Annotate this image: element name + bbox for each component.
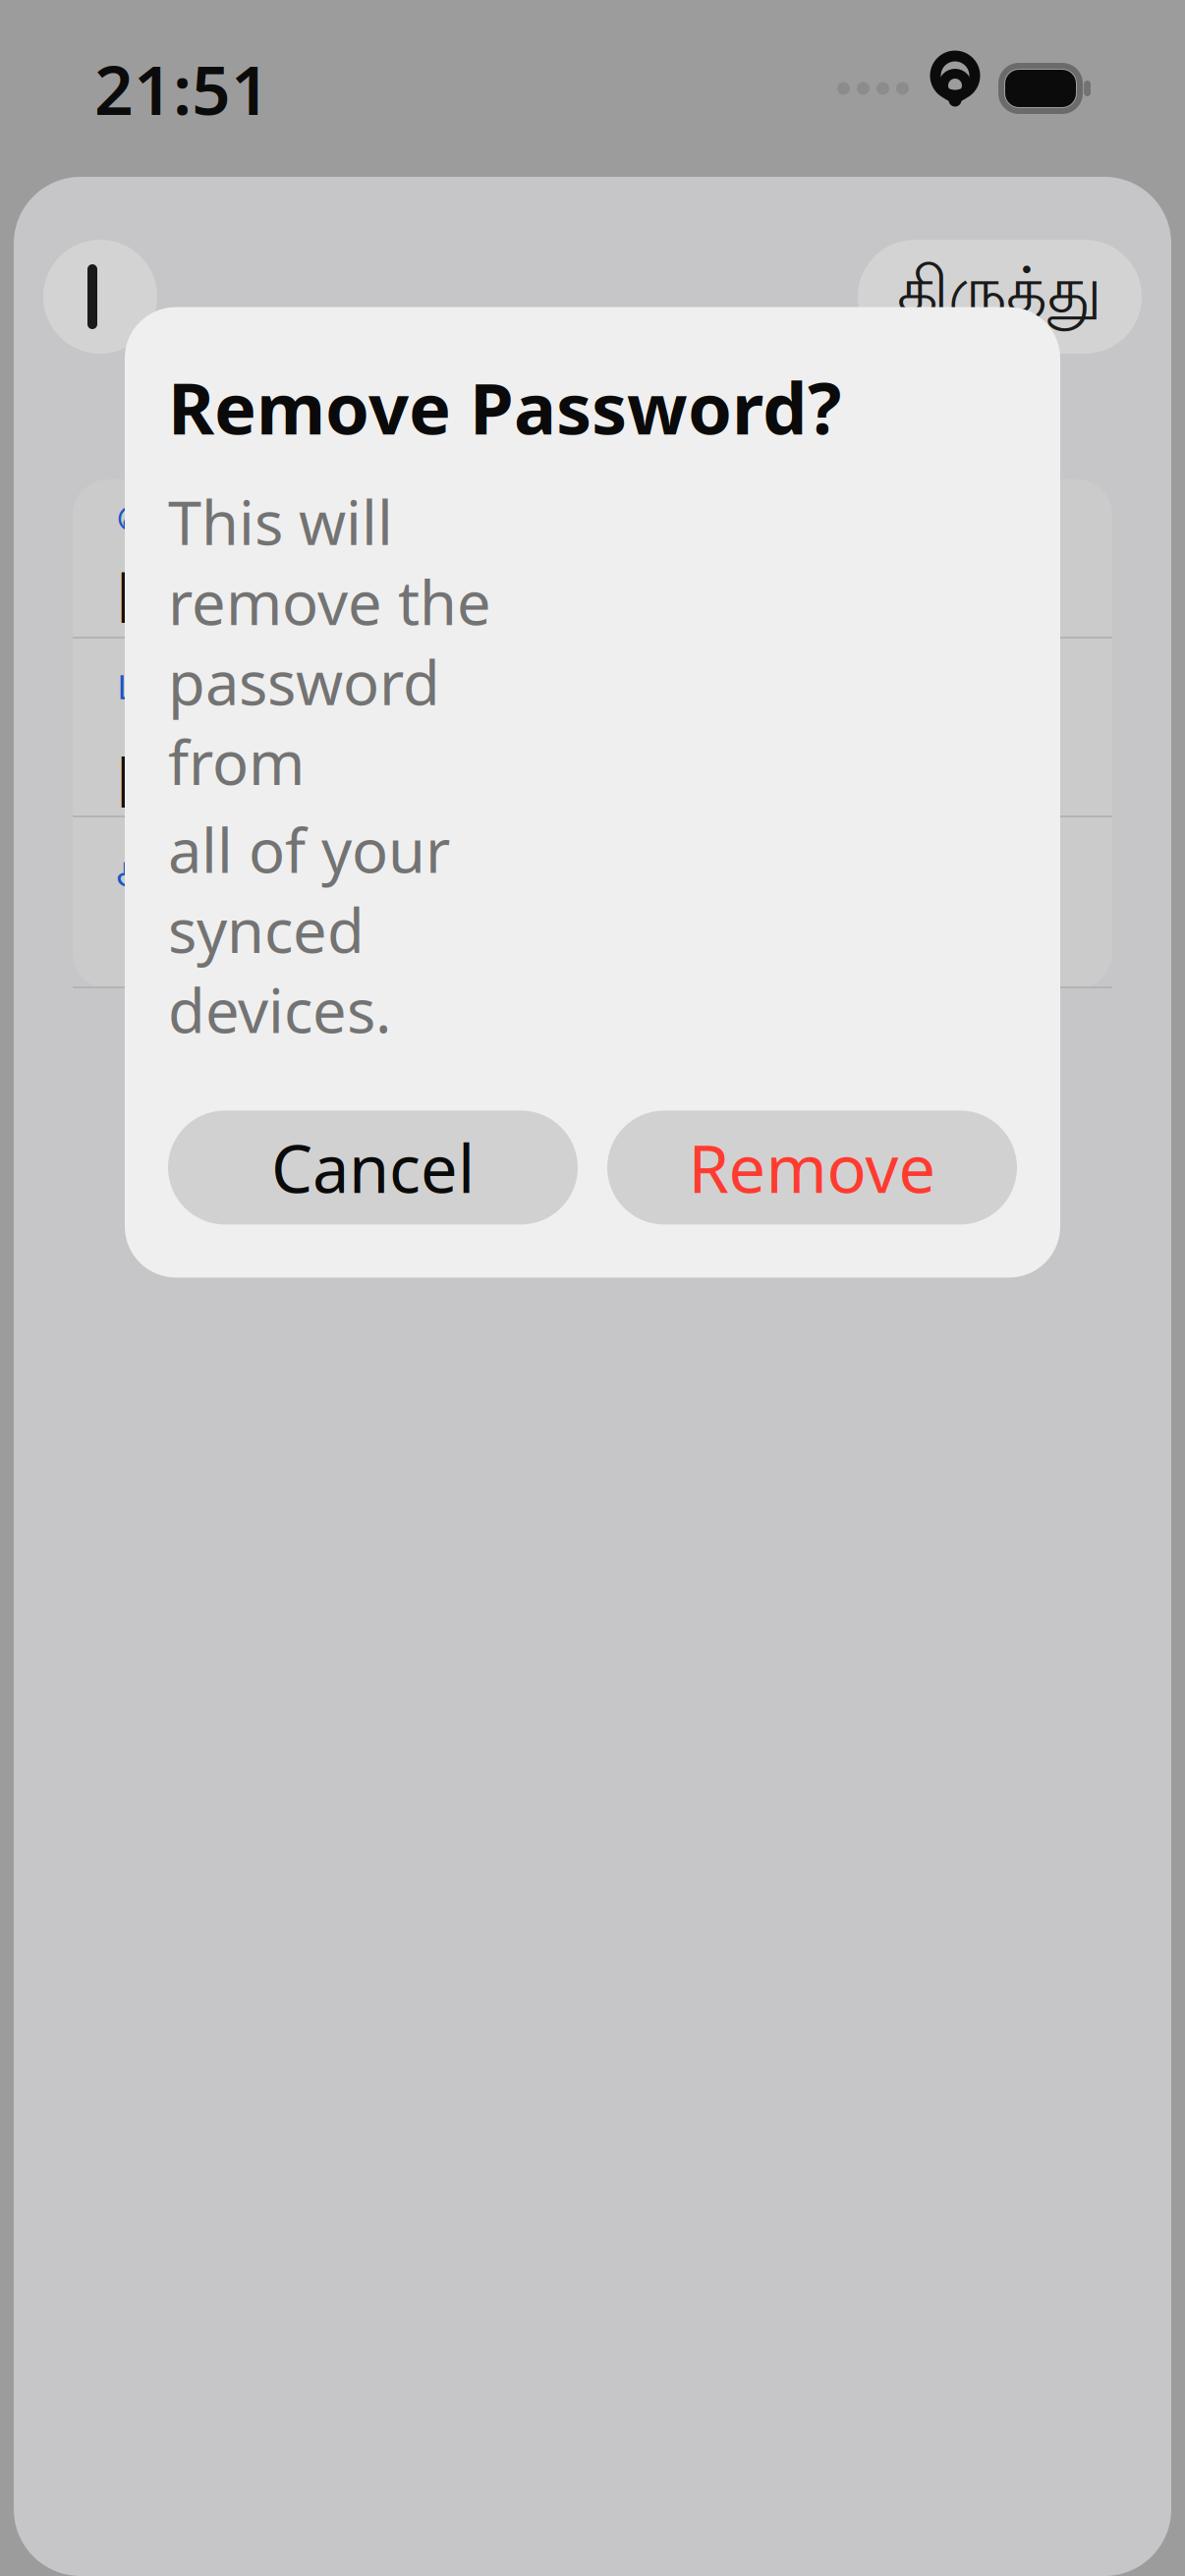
staticText: p [116,723,156,810]
button[interactable]: Remove [607,1111,1017,1225]
staticText: கடவுச்சொல் [116,845,394,904]
staticText: Remove Password? [168,360,841,454]
button[interactable]: Back [43,240,157,354]
staticText: Remove [688,1124,936,1211]
staticText: all of your synced devices. [168,810,450,1050]
staticText: https://d [116,554,382,641]
button[interactable]: வலைத்தளம் [73,479,1112,637]
button[interactable]: கடவுச்சொல் [73,817,1112,986]
staticText: This will remove the password from [168,482,491,802]
button[interactable]: Cancel [168,1111,578,1225]
button[interactable]: திருத்து [858,240,1142,354]
staticText: பயனர்பெயர் [116,658,413,717]
staticText: Cancel [271,1124,475,1211]
staticText: திருத்து [897,259,1102,334]
staticText: 21:51 [94,43,270,134]
staticText: வலைத்தளம் [116,489,402,548]
button[interactable]: பயனர்பெயர் [73,639,1112,815]
